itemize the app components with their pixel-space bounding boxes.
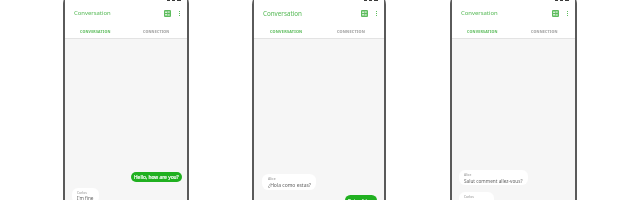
button[interactable]: New conversation [360, 9, 369, 18]
button[interactable]: New conversation [163, 9, 172, 18]
staticText: Carlos [77, 190, 87, 194]
button[interactable]: More options [372, 9, 381, 18]
staticText: CONNECTION [531, 29, 558, 34]
staticText: Estoy bien [348, 197, 374, 200]
staticText: I'm fine [77, 195, 94, 200]
staticText: ¿Hola como estas? [268, 182, 311, 189]
button[interactable]: Alice [262, 174, 316, 190]
button[interactable]: CONVERSATION [254, 24, 319, 38]
button[interactable]: Estoy bien [345, 195, 377, 200]
button[interactable]: More options [563, 9, 572, 18]
button[interactable]: Carlos [459, 192, 494, 200]
button[interactable]: More options [175, 9, 184, 18]
button[interactable]: CONVERSATION [65, 24, 126, 38]
staticText: CONVERSATION [80, 29, 111, 34]
staticText: CONNECTION [337, 29, 366, 34]
button[interactable]: CONVERSATION [452, 24, 513, 38]
button[interactable]: Hello, how are you? [131, 172, 182, 182]
staticText: Conversation [263, 9, 302, 18]
button[interactable]: CONNECTION [126, 24, 187, 38]
staticText: Alice [268, 176, 276, 181]
staticText: Conversation [74, 9, 111, 17]
staticText: CONVERSATION [270, 29, 303, 34]
button[interactable]: CONNECTION [513, 24, 575, 38]
button[interactable]: Carlos [72, 188, 99, 200]
button[interactable]: New conversation [551, 9, 560, 18]
staticText: Salut comment allez-vous? [464, 178, 523, 184]
staticText: CONNECTION [143, 29, 170, 34]
button[interactable]: CONNECTION [319, 24, 384, 38]
staticText: Carlos [464, 194, 474, 199]
staticText: CONVERSATION [467, 29, 498, 34]
button[interactable]: Alice [459, 170, 528, 185]
staticText: Conversation [461, 9, 498, 17]
staticText: Alice [464, 172, 472, 177]
staticText: Hello, how are you? [134, 174, 179, 181]
